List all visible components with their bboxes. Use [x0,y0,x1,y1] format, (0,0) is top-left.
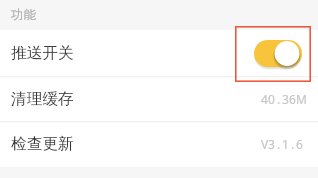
staticText: 6 [296,136,303,152]
staticText: 4 [261,91,268,107]
button[interactable]: 清理缓存 [0,76,318,121]
staticText: 6 [289,91,296,107]
button[interactable]: 推送开关 [0,30,318,76]
staticText: 0 [268,91,275,107]
staticText: 推送开关 [11,43,74,63]
staticText: 功能 [11,7,36,23]
staticText: . [277,136,281,152]
staticText: 清理缓存 [11,89,74,109]
staticText: V [261,136,268,152]
staticText: . [291,136,295,152]
button[interactable]: 检查更新 [0,121,318,167]
staticText: 检查更新 [11,134,74,154]
button[interactable]: 推送开关 push notification switch, on [252,37,303,69]
staticText: 3 [268,136,275,152]
staticText: 1 [282,136,289,152]
staticText: 3 [282,91,289,107]
staticText: M [296,91,303,107]
staticText: . [277,91,281,107]
